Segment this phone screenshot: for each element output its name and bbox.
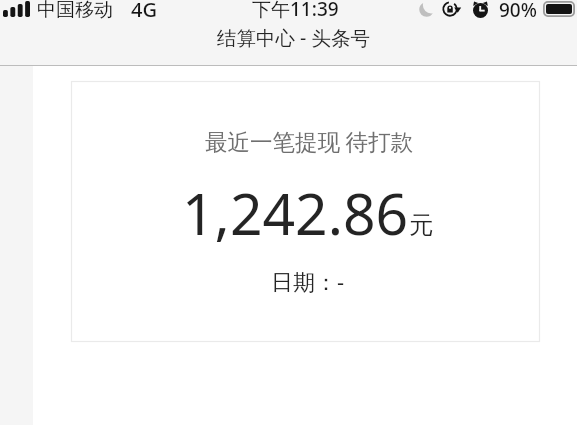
staticText: 结算中心 - 头条号 — [217, 24, 370, 51]
staticText: 下午11:39 — [252, 0, 339, 20]
other: Signal strength — [3, 1, 30, 17]
staticText: 元 — [409, 210, 433, 240]
other: Battery 90 percent — [543, 1, 577, 17]
staticText: 90% — [499, 0, 537, 21]
staticText: 日期：- — [271, 266, 345, 296]
staticText: 中国移动 — [37, 0, 113, 22]
button[interactable]: 结算中心 - 头条号 — [0, 24, 577, 65]
staticText: 最近一笔提现 待打款 — [205, 126, 414, 157]
button[interactable]: 最近一笔提现 待打款 — [71, 81, 540, 342]
other: Do not disturb — [419, 2, 434, 17]
staticText: 4G — [131, 0, 157, 20]
other: Alarm — [472, 1, 489, 18]
other: Rotation lock — [443, 1, 459, 17]
staticText: 1,242.86 — [182, 174, 409, 252]
